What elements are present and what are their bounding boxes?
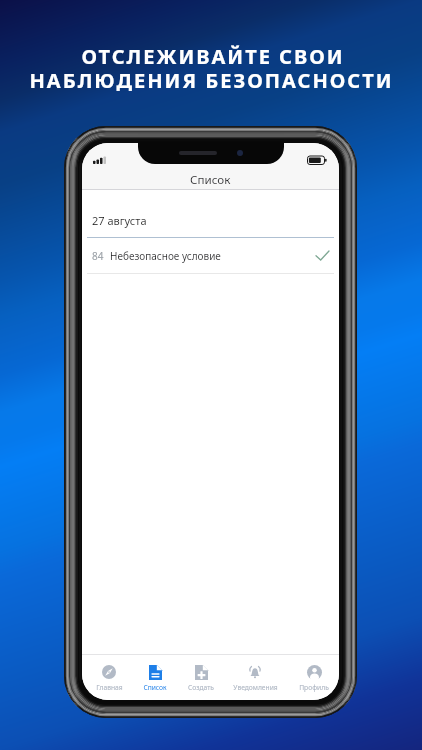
other: Создать: [195, 665, 208, 680]
staticText: ОТСЛЕЖИВАЙТЕ СВОИ: [81, 43, 345, 70]
staticText: Список: [190, 172, 231, 188]
other: Главная: [102, 665, 116, 679]
button[interactable]: Уведомления: [226, 655, 284, 700]
button[interactable]: 84: [82, 238, 339, 273]
staticText: Небезопасное условие: [110, 249, 221, 263]
staticText: 27 августа: [92, 213, 147, 228]
staticText: Профиль: [299, 683, 329, 692]
staticText: 84: [92, 249, 104, 263]
staticText: Создать: [188, 683, 214, 692]
staticText: НАБЛЮДЕНИЯ БЕЗОПАСНОСТИ: [29, 67, 394, 94]
other: Профиль: [307, 665, 322, 680]
button[interactable]: Главная: [86, 655, 132, 700]
staticText: Список: [143, 683, 167, 692]
button[interactable]: 27 августа: [82, 190, 339, 237]
button[interactable]: Список: [132, 655, 178, 700]
other: Список: [149, 665, 162, 680]
staticText: Главная: [96, 683, 123, 692]
staticText: Уведомления: [233, 683, 278, 692]
button[interactable]: Создать: [176, 655, 226, 700]
other: Уведомления: [248, 665, 262, 679]
button[interactable]: Профиль: [289, 655, 339, 700]
